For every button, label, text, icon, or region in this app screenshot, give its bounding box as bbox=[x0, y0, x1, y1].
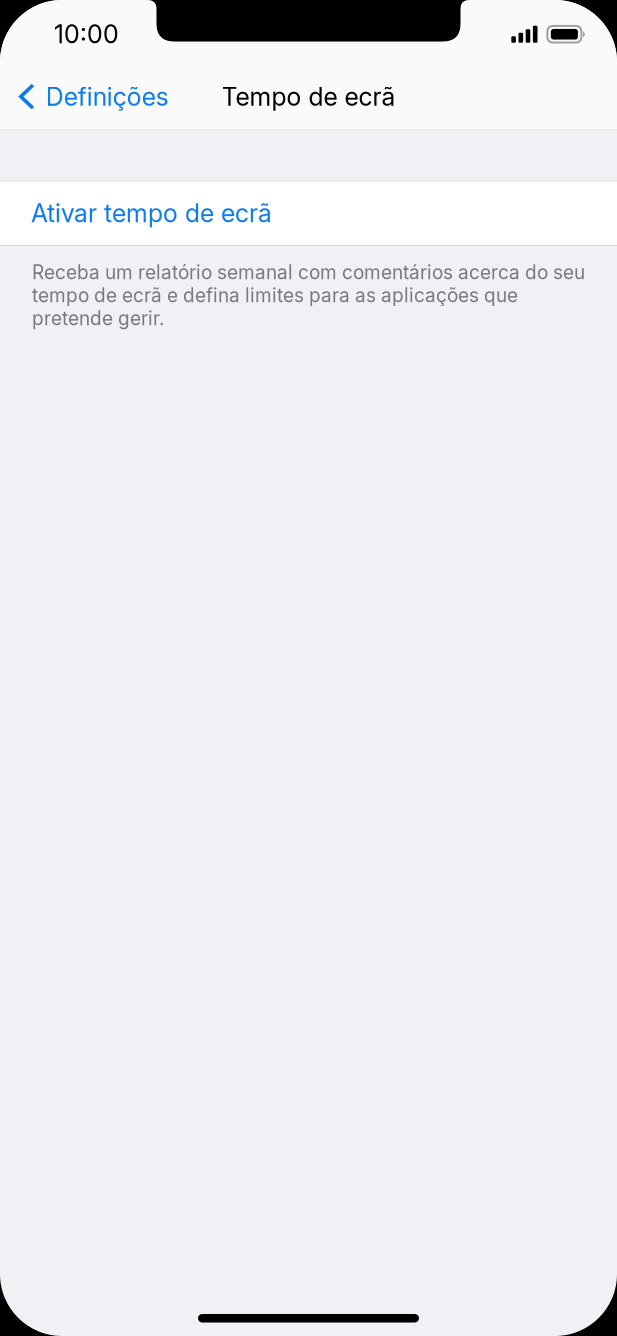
staticText: Receba um relatório semanal com comentár… bbox=[32, 261, 585, 330]
staticText: Tempo de ecrã bbox=[221, 81, 395, 112]
staticText: Ativar tempo de ecrã bbox=[31, 198, 272, 228]
button[interactable]: Definições bbox=[0, 68, 181, 130]
staticText: Definições bbox=[46, 81, 169, 112]
button[interactable]: Ativar tempo de ecrã bbox=[0, 181, 617, 245]
staticText: 10:00 bbox=[54, 19, 119, 49]
